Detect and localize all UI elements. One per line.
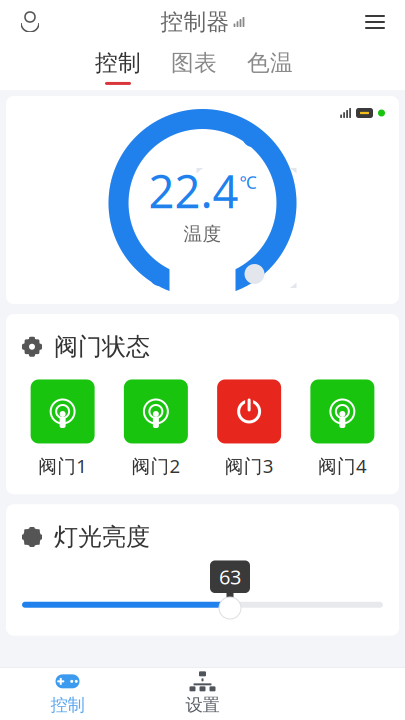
staticText: 灯光亮度 (54, 522, 150, 552)
button[interactable]: 控制 (86, 44, 150, 90)
staticText: 阀门2 (131, 453, 180, 478)
button[interactable]: 色温 (238, 44, 302, 90)
staticText: 阀门3 (225, 453, 274, 478)
staticText: 设置 (185, 694, 219, 716)
button[interactable]: 阀门4 (296, 379, 389, 478)
staticText: 22.4 (148, 160, 238, 221)
staticText: 控制器 (161, 8, 230, 36)
button[interactable]: 阀门3 (202, 379, 296, 478)
button[interactable]: 阀门1 (16, 379, 109, 478)
button[interactable]: 设置 (135, 668, 270, 720)
button[interactable]: 阀门2 (109, 379, 202, 478)
button[interactable]: Account (8, 0, 52, 44)
staticText: 温度 (183, 223, 221, 245)
staticText: 控制 (50, 694, 84, 716)
staticText: 色温 (247, 49, 293, 77)
button[interactable]: 图表 (162, 44, 226, 90)
staticText: 阀门4 (318, 453, 367, 478)
staticText: 阀门1 (38, 453, 87, 478)
staticText: 图表 (171, 49, 217, 77)
button[interactable]: 控制 (0, 668, 135, 720)
staticText: 阀门状态 (54, 332, 150, 361)
button[interactable]: Menu (353, 0, 397, 44)
staticText: 控制 (95, 49, 141, 77)
staticText: ℃ (239, 170, 256, 193)
staticText: 63 (219, 563, 241, 590)
